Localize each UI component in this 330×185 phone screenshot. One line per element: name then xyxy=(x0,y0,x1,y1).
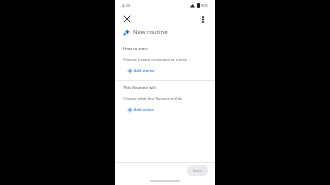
staticText: Add action xyxy=(134,107,154,112)
staticText: This Routine will xyxy=(123,85,156,91)
button[interactable]: More options xyxy=(197,13,209,25)
staticText: 4:33 xyxy=(122,3,130,8)
button[interactable]: Close xyxy=(121,13,133,25)
staticText: Choose what this Routine will do xyxy=(123,96,183,101)
staticText: How to start xyxy=(123,46,148,52)
staticText: Add starter xyxy=(134,68,156,73)
staticText: 80% xyxy=(201,3,208,8)
button[interactable]: Add starter xyxy=(125,66,159,75)
button[interactable]: Add action xyxy=(125,105,157,114)
staticText: Choose a voice command or a time xyxy=(123,57,188,62)
staticText: Save xyxy=(193,168,202,173)
button[interactable]: Save xyxy=(187,165,208,176)
staticText: New routine xyxy=(133,28,168,36)
